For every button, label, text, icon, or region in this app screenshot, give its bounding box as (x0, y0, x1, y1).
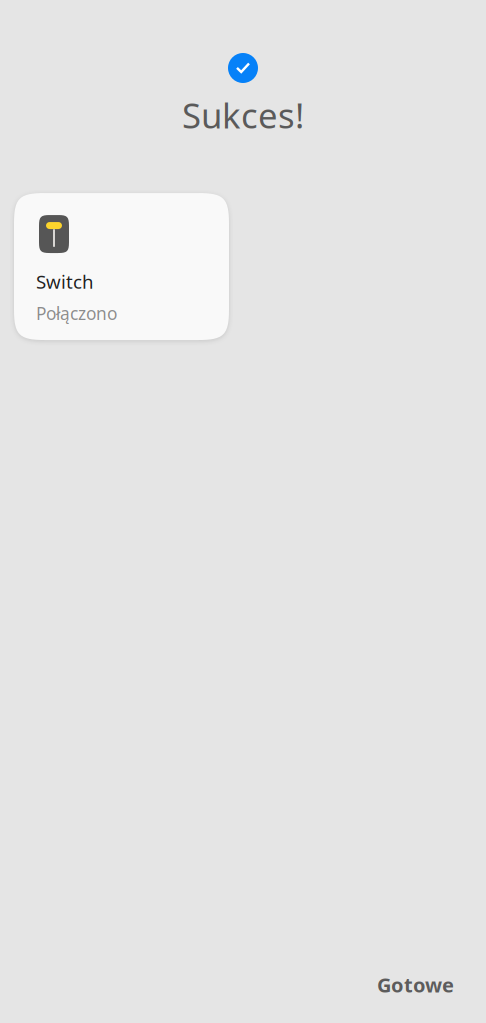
staticText: Sukces! (182, 92, 304, 138)
staticText: Switch (36, 269, 94, 294)
button[interactable]: Switch (14, 193, 229, 340)
staticText: Gotowe (377, 971, 454, 998)
staticText: Połączono (36, 302, 117, 325)
button[interactable]: Gotowe (363, 959, 468, 1010)
